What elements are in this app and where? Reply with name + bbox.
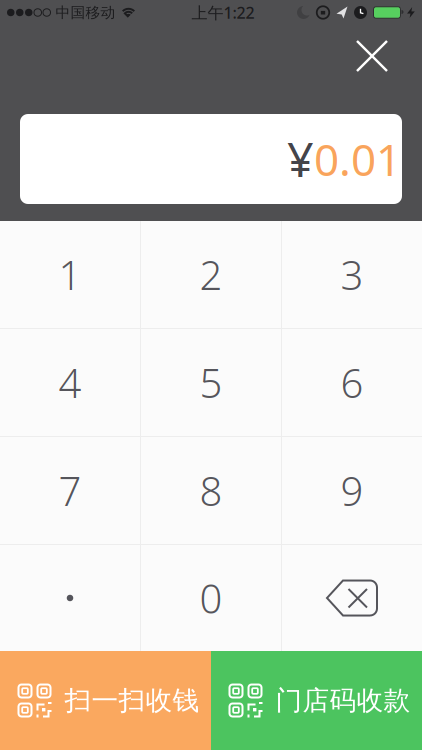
button[interactable]: 7 [0, 437, 140, 544]
button[interactable]: 1 [0, 221, 140, 328]
button[interactable]: 4 [0, 329, 140, 436]
button[interactable]: 扫一扫收钱 [0, 651, 211, 750]
staticText: 2 [199, 248, 222, 301]
button[interactable]: Decimal point [0, 545, 140, 651]
staticText: 9 [340, 464, 363, 517]
button[interactable]: Delete [282, 545, 422, 651]
staticText: 门店码收款 [275, 684, 410, 717]
staticText: ¥ [287, 128, 314, 190]
staticText: 8 [199, 464, 222, 517]
button[interactable]: Close [357, 41, 387, 71]
staticText: 上午1:22 [191, 2, 254, 23]
button[interactable]: 8 [141, 437, 281, 544]
staticText: 扫一扫收钱 [64, 684, 199, 717]
staticText: 5 [199, 356, 222, 409]
staticText: 1 [58, 248, 81, 301]
button[interactable]: 0 [141, 545, 281, 651]
button[interactable]: 5 [141, 329, 281, 436]
staticText: 中国移动 [55, 3, 115, 21]
staticText: 3 [340, 248, 363, 301]
staticText: 4 [58, 356, 81, 409]
button[interactable]: 6 [282, 329, 422, 436]
button[interactable]: 2 [141, 221, 281, 328]
staticText: 0 [199, 571, 222, 624]
button[interactable]: 9 [282, 437, 422, 544]
button[interactable]: 3 [282, 221, 422, 328]
staticText: 6 [340, 356, 363, 409]
staticText: 0.01 [314, 130, 401, 188]
button[interactable]: 门店码收款 [211, 651, 422, 750]
staticText: 7 [58, 464, 81, 517]
